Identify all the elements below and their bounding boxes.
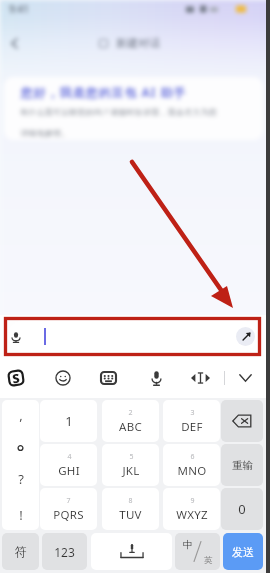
button[interactable]: 您好，我是您的豆包 AI 助手: [4, 77, 263, 140]
button[interactable]: Switch keyboard: [95, 365, 121, 391]
staticText: ?: [18, 470, 24, 488]
staticText: WXYZ: [176, 507, 208, 523]
button[interactable]: 7: [40, 488, 97, 530]
staticText: 中: [183, 538, 193, 551]
staticText: ,: [19, 406, 23, 424]
staticText: TUV: [119, 507, 142, 523]
staticText: 符: [15, 544, 27, 559]
button[interactable]: Move cursor: [187, 365, 213, 391]
staticText: 4: [67, 452, 72, 462]
staticText: !: [19, 506, 23, 524]
button[interactable]: 6: [163, 444, 220, 486]
staticText: DEF: [181, 419, 203, 435]
button[interactable]: 3: [163, 400, 220, 442]
staticText: JKL: [122, 463, 140, 479]
staticText: 8: [128, 496, 133, 506]
button[interactable]: 0: [221, 488, 263, 530]
staticText: 7: [66, 496, 71, 506]
staticText: 有什么我可以帮您的吗？请随时告诉我，我会尽力为您: [20, 107, 217, 117]
staticText: 0: [238, 500, 246, 518]
staticText: 重输: [232, 459, 253, 472]
button[interactable]: 发送: [223, 533, 263, 570]
button[interactable]: Voice: [143, 365, 169, 391]
button[interactable]: Expand input: [236, 327, 255, 346]
button[interactable]: 符: [2, 533, 39, 570]
staticText: 您好，我是您的豆包 AI 助手: [20, 84, 187, 100]
button[interactable]: 重输: [221, 444, 263, 486]
staticText: PQRS: [53, 507, 84, 523]
staticText: MNO: [177, 463, 207, 479]
staticText: 9:41: [9, 2, 29, 16]
staticText: GHI: [58, 463, 80, 479]
staticText: 9: [190, 496, 195, 506]
staticText: 1: [65, 412, 73, 430]
staticText: 5: [129, 452, 134, 462]
button[interactable]: 2: [102, 400, 159, 442]
button[interactable]: Chinese English switch: [175, 533, 220, 570]
button[interactable]: 9: [163, 488, 220, 530]
staticText: 3: [190, 408, 195, 418]
staticText: 发送: [232, 545, 254, 559]
button[interactable]: Backspace: [221, 400, 263, 442]
button[interactable]: Space: [91, 533, 172, 570]
button[interactable]: [8, 320, 257, 352]
staticText: 123: [54, 544, 75, 560]
button[interactable]: Emoji: [50, 365, 76, 391]
button[interactable]: 5: [102, 444, 159, 486]
button[interactable]: 1: [40, 400, 97, 442]
staticText: ABC: [119, 419, 142, 435]
staticText: 详细地解答。: [20, 128, 70, 138]
button[interactable]: 新建对话: [99, 36, 160, 50]
button[interactable]: 4: [40, 444, 97, 486]
staticText: 2: [128, 408, 133, 418]
button[interactable]: Hide keyboard: [232, 365, 258, 391]
staticText: 6: [190, 452, 195, 462]
staticText: 新建对话: [116, 36, 160, 50]
button[interactable]: 123: [42, 533, 87, 570]
staticText: S: [11, 369, 21, 386]
button[interactable]: 8: [102, 488, 159, 530]
button[interactable]: Voice input: [5, 327, 26, 348]
button[interactable]: Back: [0, 30, 28, 56]
button[interactable]: ,: [2, 400, 39, 530]
staticText: 英: [204, 555, 213, 566]
button[interactable]: Sogou input method: [3, 365, 29, 391]
